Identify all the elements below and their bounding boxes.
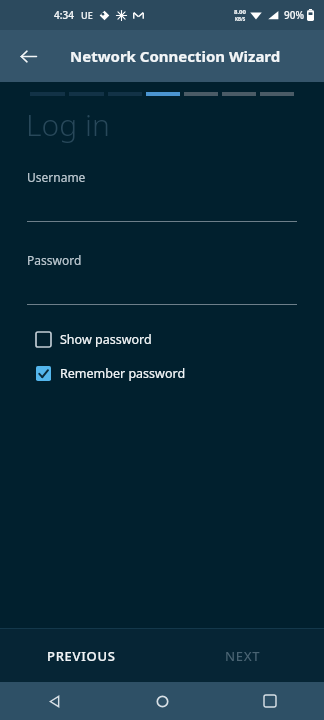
staticText: PREVIOUS: [47, 647, 116, 665]
staticText: 90%: [284, 8, 304, 22]
button[interactable]: Recents: [216, 682, 324, 720]
button[interactable]: Show password: [0, 325, 324, 353]
staticText: KB/S: [235, 16, 246, 22]
staticText: Log in: [26, 104, 110, 145]
button[interactable]: PREVIOUS: [0, 629, 162, 682]
button[interactable]: Back: [8, 36, 48, 76]
staticText: 4:34: [54, 8, 74, 22]
staticText: Password: [27, 252, 82, 268]
staticText: Remember password: [60, 365, 186, 382]
button[interactable]: Home: [108, 682, 216, 720]
button[interactable]: Password: [0, 252, 324, 305]
staticText: NEXT: [225, 647, 261, 665]
button[interactable]: NEXT: [162, 629, 324, 682]
staticText: 8.00: [234, 8, 246, 16]
button[interactable]: Remember password: [0, 359, 324, 387]
staticText: Network Connection Wizard: [70, 46, 281, 66]
staticText: UE: [81, 9, 93, 21]
staticText: Show password: [60, 331, 152, 348]
button[interactable]: Back: [0, 682, 108, 720]
staticText: Username: [27, 169, 86, 185]
button[interactable]: Username: [0, 169, 324, 222]
